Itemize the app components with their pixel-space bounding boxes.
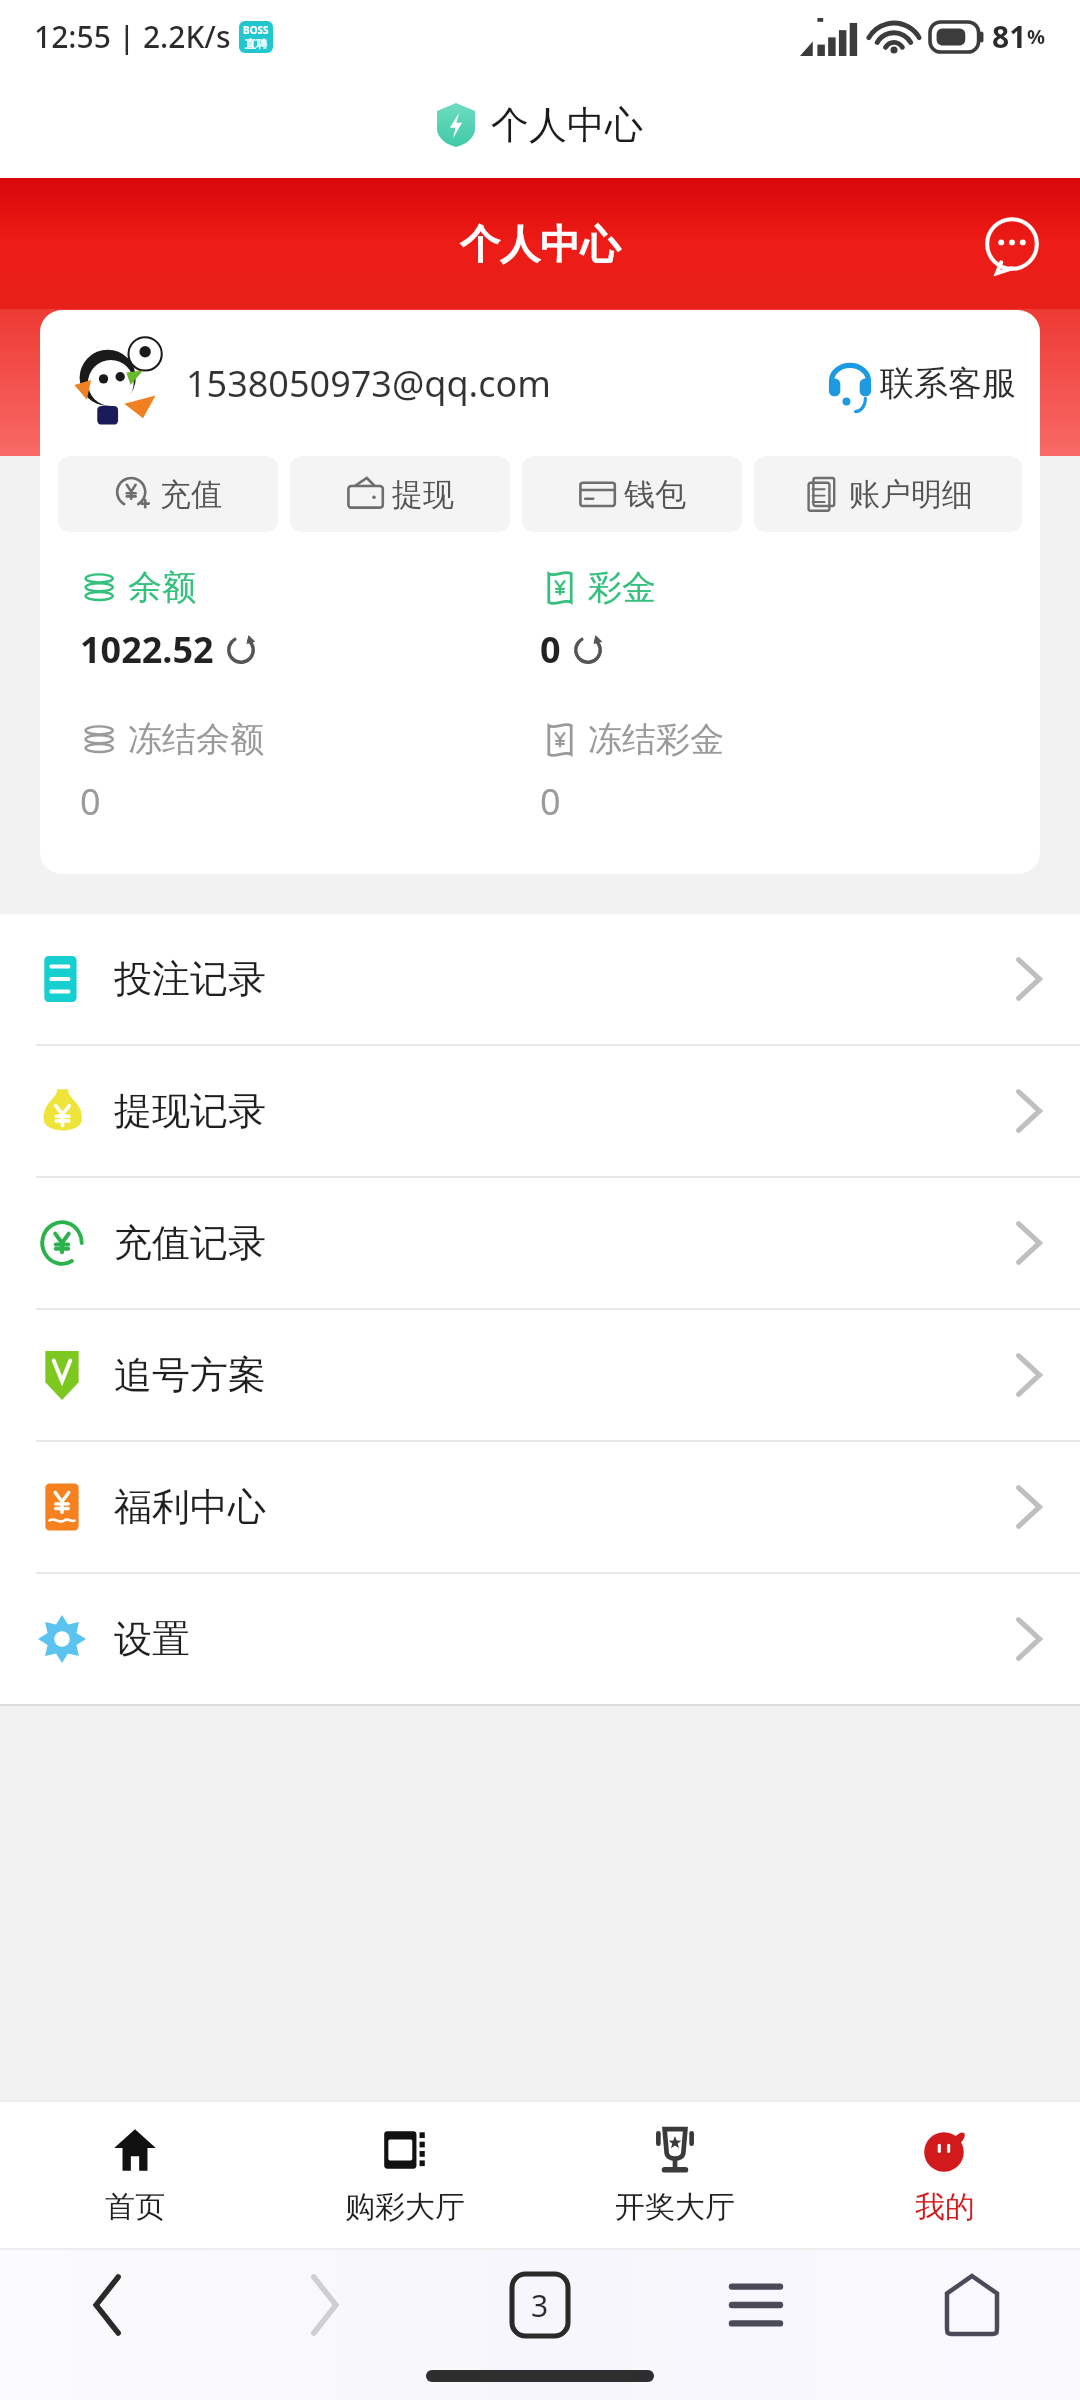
staticText: 提现记录 [114,1087,266,1135]
staticText: 首页 [105,2188,165,2226]
staticText: 0 [80,777,101,826]
button[interactable]: 余额 [80,566,540,674]
button[interactable]: 我的 [810,2102,1080,2248]
other: Forward [307,2277,341,2333]
button[interactable]: 联系客服 [828,361,1016,405]
staticText: % [1027,23,1046,50]
button[interactable]: 彩金 [540,566,1000,674]
staticText: 个人中心 [491,101,643,149]
staticText: 3 [531,2285,549,2326]
staticText: 联系客服 [880,362,1016,405]
staticText: 购彩大厅 [345,2188,465,2226]
staticText: 0 [540,777,561,826]
staticText: 提现 [392,475,454,514]
staticText: 彩金 [588,566,656,609]
staticText: 81 [992,16,1027,57]
staticText: 充值 [160,475,222,514]
button[interactable]: 提现记录 [0,1046,1080,1176]
staticText: 冻结余额 [128,718,264,761]
staticText: 冻结彩金 [588,718,724,761]
staticText: BOSS [243,23,269,37]
staticText: 1538050973@qq.com [186,359,551,408]
button[interactable]: 充值记录 [0,1178,1080,1308]
staticText: 12:55 | 2.2K/s [34,16,231,57]
button[interactable]: Messages [974,206,1050,282]
staticText: 直聘 [245,37,267,51]
button[interactable]: 提现 [290,456,510,532]
button[interactable]: 充值 [58,456,278,532]
button[interactable]: 账户明细 [754,456,1022,532]
other: Back [91,2277,125,2333]
button[interactable]: 首页 [0,2102,270,2248]
staticText: 余额 [128,566,196,609]
button[interactable]: 设置 [0,1574,1080,1704]
staticText: 账户明细 [849,475,973,514]
other: Home [947,2276,997,2334]
button[interactable]: 购彩大厅 [270,2102,540,2248]
staticText: 1022.52 [80,625,214,674]
staticText: 个人中心 [460,219,620,269]
button[interactable]: 钱包 [522,456,742,532]
staticText: 投注记录 [114,955,266,1003]
button[interactable]: 冻结余额 [80,718,540,826]
staticText: 0 [540,625,561,674]
staticText: 我的 [915,2188,975,2226]
staticText: 钱包 [624,475,686,514]
button[interactable]: 福利中心 [0,1442,1080,1572]
button[interactable]: 追号方案 [0,1310,1080,1440]
staticText: 追号方案 [114,1351,266,1399]
staticText: 福利中心 [114,1483,266,1531]
staticText: 充值记录 [114,1219,266,1267]
other: Menu [732,2282,780,2328]
button[interactable]: 投注记录 [0,914,1080,1044]
staticText: 开奖大厅 [615,2188,735,2226]
button[interactable]: 冻结彩金 [540,718,1000,826]
other: Tabs [512,2274,568,2336]
button[interactable]: 开奖大厅 [540,2102,810,2248]
staticText: 设置 [114,1615,190,1663]
